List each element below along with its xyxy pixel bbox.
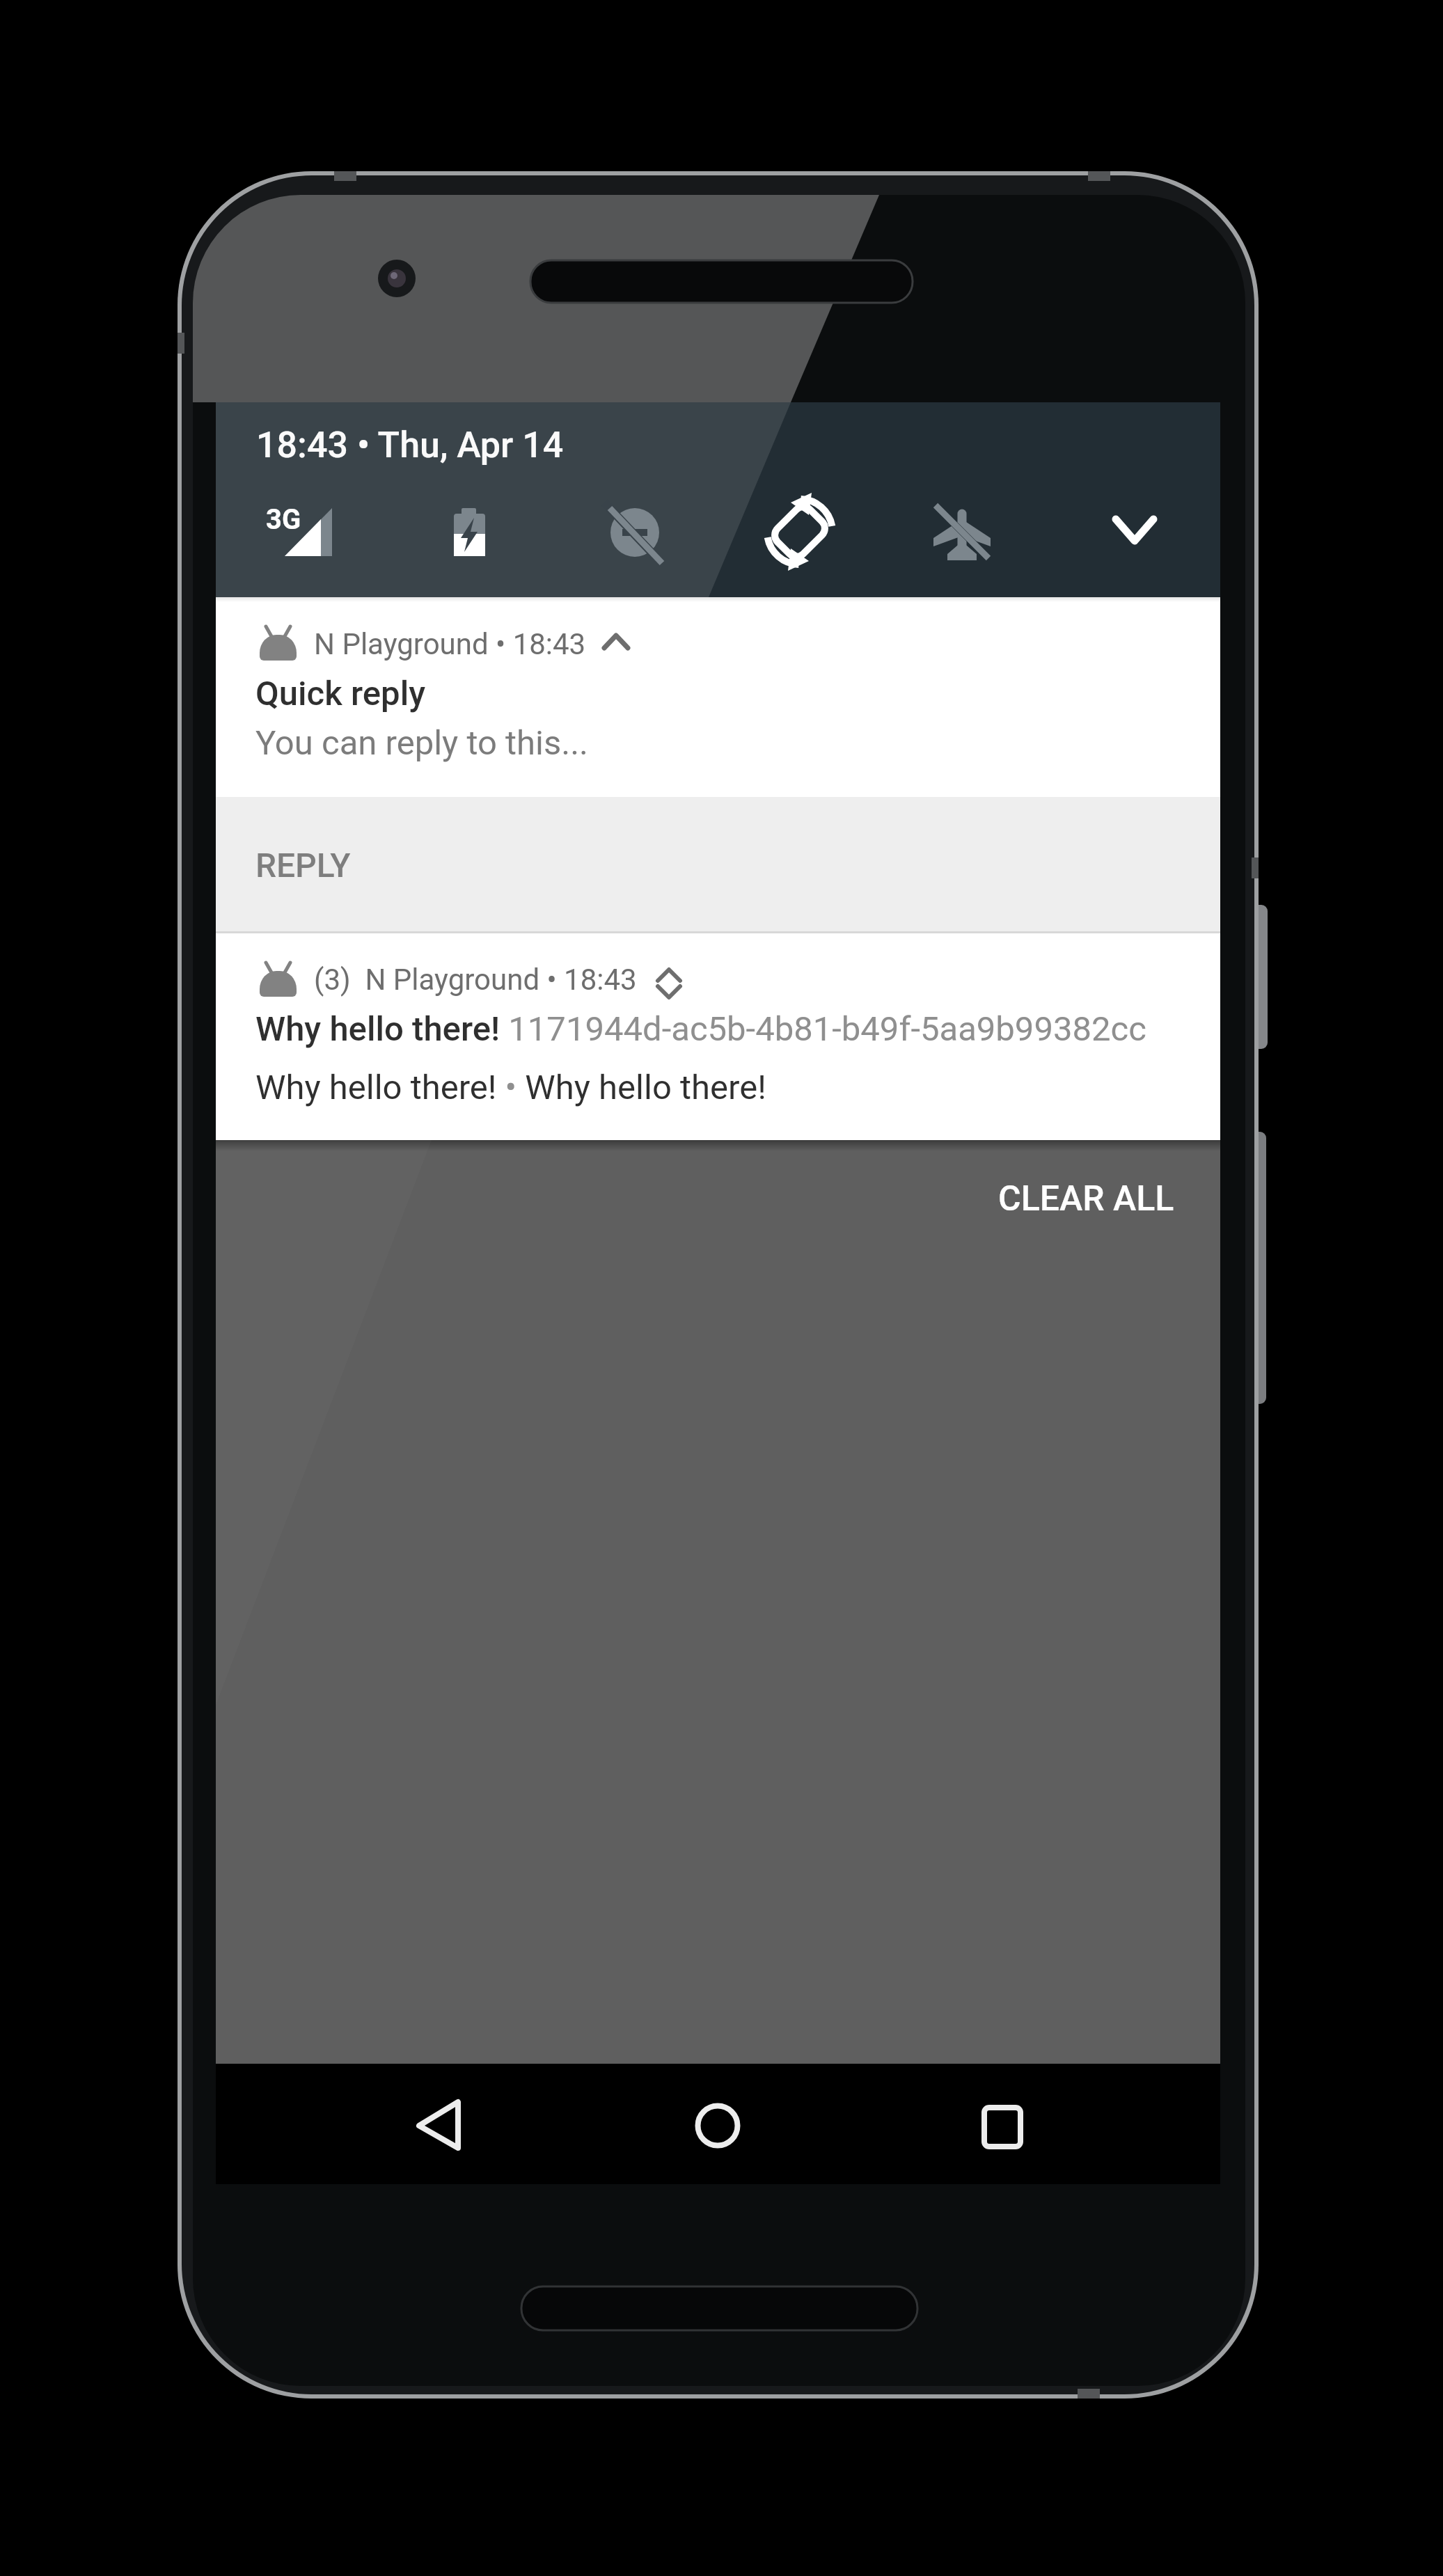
button[interactable] (655, 2078, 780, 2170)
staticText: Why hello there! • Why hello there! (255, 1068, 766, 1107)
button[interactable] (216, 933, 1220, 1140)
staticText: Why hello there! 1171944d-ac5b-4b81-b49f… (255, 1009, 1146, 1049)
staticText: 3G (266, 503, 301, 536)
button[interactable] (750, 491, 862, 575)
button[interactable] (216, 797, 1220, 931)
staticText: 18:43 • Thu, Apr 14 (256, 424, 564, 466)
button[interactable] (413, 491, 524, 575)
staticText: (3) N Playground • 18:43 (314, 963, 637, 997)
button[interactable] (252, 491, 363, 575)
button[interactable] (377, 2078, 503, 2170)
button[interactable] (216, 597, 1220, 797)
button[interactable] (940, 2078, 1065, 2170)
staticText: CLEAR ALL (998, 1178, 1174, 1219)
button[interactable] (593, 491, 704, 575)
staticText: REPLY (255, 846, 351, 885)
button[interactable] (1078, 491, 1190, 575)
staticText: Quick reply (255, 674, 426, 713)
staticText: You can reply to this... (255, 723, 589, 763)
staticText: N Playground • 18:43 (314, 627, 586, 661)
button[interactable] (940, 491, 1051, 575)
button[interactable] (981, 1164, 1183, 1234)
